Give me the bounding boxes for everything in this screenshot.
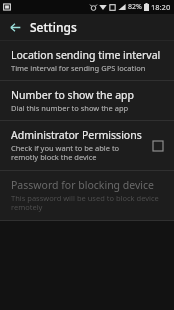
- staticText: 18:20: [151, 2, 171, 12]
- staticText: Settings: [30, 19, 77, 35]
- staticText: Location sending time interval: [11, 48, 161, 62]
- staticText: Password for blocking device: [11, 178, 154, 192]
- button[interactable]: Location sending time interval: [0, 41, 174, 80]
- staticText: Dial this number to show the app: [11, 103, 129, 113]
- button[interactable]: Administrator Permissions checkbox: [149, 137, 167, 155]
- staticText: 82%: [128, 2, 142, 12]
- staticText: Time interval for sending GPS location: [11, 63, 146, 73]
- staticText: Number to show the app: [11, 88, 134, 102]
- button[interactable]: Number to show the app: [0, 81, 174, 120]
- button[interactable]: Password for blocking device: [0, 171, 174, 220]
- staticText: Administrator Permissions: [11, 128, 142, 142]
- staticText: This password will be used to block devi…: [11, 193, 167, 213]
- staticText: Check if you want to be able to remotly …: [11, 143, 143, 163]
- button[interactable]: Administrator Permissions: [0, 121, 174, 170]
- button[interactable]: Back: [5, 17, 25, 37]
